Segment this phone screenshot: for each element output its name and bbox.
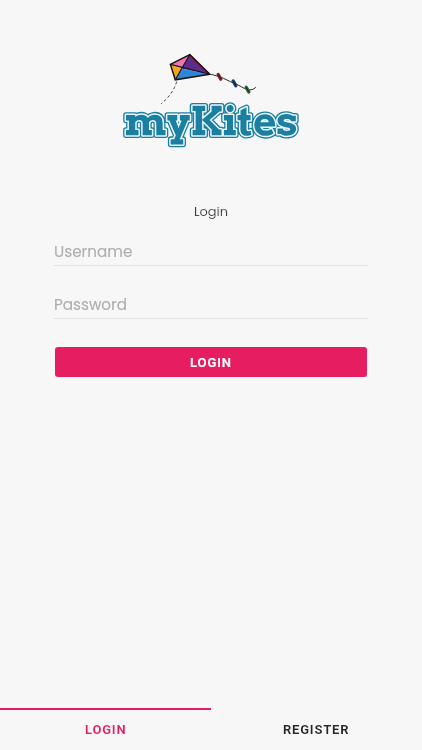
staticText: LOGIN [85, 722, 127, 737]
button[interactable]: Password [54, 294, 128, 315]
staticText: Password [54, 294, 128, 315]
staticText: Login [0, 202, 422, 220]
button[interactable]: REGISTER [211, 710, 422, 748]
staticText: Username [54, 241, 133, 262]
staticText: REGISTER [283, 722, 350, 737]
staticText: LOGIN [190, 355, 232, 370]
button[interactable]: LOGIN [55, 347, 367, 377]
button[interactable]: LOGIN [0, 710, 211, 748]
button[interactable]: Username [54, 241, 133, 262]
